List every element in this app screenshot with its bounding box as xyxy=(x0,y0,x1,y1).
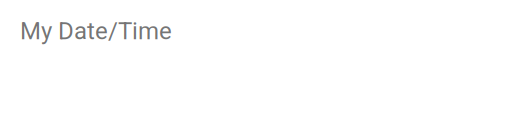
staticText: My Date/Time xyxy=(20,17,172,45)
